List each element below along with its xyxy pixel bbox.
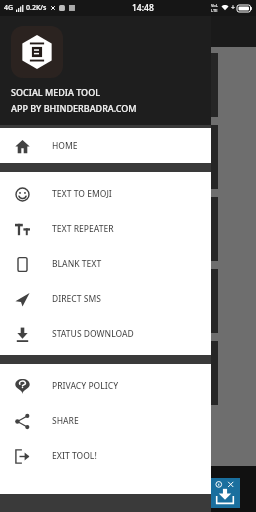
staticText: 4G: [4, 3, 14, 13]
staticText: PRIVACY POLICY: [52, 380, 119, 392]
button[interactable]: STATUS DOWNLOAD: [0, 316, 211, 351]
staticText: VoL: [211, 3, 218, 8]
staticText: SOCIAL MEDIA TOOL: [11, 86, 101, 98]
staticText: APP BY BHINDERBADRA.COM: [11, 102, 137, 114]
button[interactable]: DIRECT SMS: [0, 281, 211, 316]
button[interactable]: EXIT TOOL!: [0, 438, 211, 473]
button[interactable]: TEXT REPEATER: [0, 211, 211, 246]
staticText: SHARE: [52, 415, 79, 427]
button[interactable]: SHARE: [0, 403, 211, 438]
button[interactable]: BLANK TEXT: [0, 246, 211, 281]
staticText: +: [231, 3, 236, 13]
staticText: TEXT REPEATER: [52, 223, 114, 235]
button[interactable]: HOME: [0, 128, 211, 163]
staticText: 0.2K/s: [26, 3, 47, 13]
button[interactable]: PRIVACY POLICY: [0, 368, 211, 403]
staticText: LTE: [211, 8, 218, 13]
staticText: 14:48: [132, 2, 154, 14]
staticText: DIRECT SMS: [52, 293, 101, 305]
button[interactable]: Download ad: [210, 478, 240, 508]
staticText: HOME: [52, 140, 78, 152]
staticText: TEXT TO EMOJI: [52, 188, 112, 200]
button[interactable]: TEXT TO EMOJI: [0, 176, 211, 211]
staticText: EXIT TOOL!: [52, 450, 97, 462]
staticText: STATUS DOWNLOAD: [52, 328, 134, 340]
staticText: BLANK TEXT: [52, 258, 102, 270]
